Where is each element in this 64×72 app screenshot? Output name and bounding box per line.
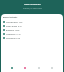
button[interactable]: Stretching 12:40 bbox=[1, 36, 63, 40]
button[interactable]: Favorites bbox=[22, 65, 28, 71]
button[interactable]: Home bbox=[9, 65, 15, 71]
staticText: Stretching 12:40 bbox=[6, 37, 20, 39]
staticText: Recent Activity bbox=[3, 16, 18, 19]
button[interactable]: Breakfast 10:00 bbox=[1, 28, 63, 32]
button[interactable]: Meditation 11:15 bbox=[1, 32, 63, 36]
staticText: Water intake 9:10 bbox=[6, 25, 22, 27]
button[interactable]: Water intake 9:10 bbox=[1, 24, 63, 28]
staticText: Meditation 11:15 bbox=[6, 33, 21, 35]
staticText: Morning walk 7:30 bbox=[6, 21, 23, 23]
button[interactable]: Morning walk 7:30 bbox=[1, 20, 63, 24]
staticText: Daily Summary bbox=[24, 3, 41, 6]
button[interactable]: Stats bbox=[36, 65, 42, 71]
button[interactable]: Profile bbox=[49, 65, 55, 71]
staticText: Breakfast 10:00 bbox=[6, 29, 20, 31]
staticText: Tuesday, 12 March 2024 bbox=[23, 7, 42, 9]
